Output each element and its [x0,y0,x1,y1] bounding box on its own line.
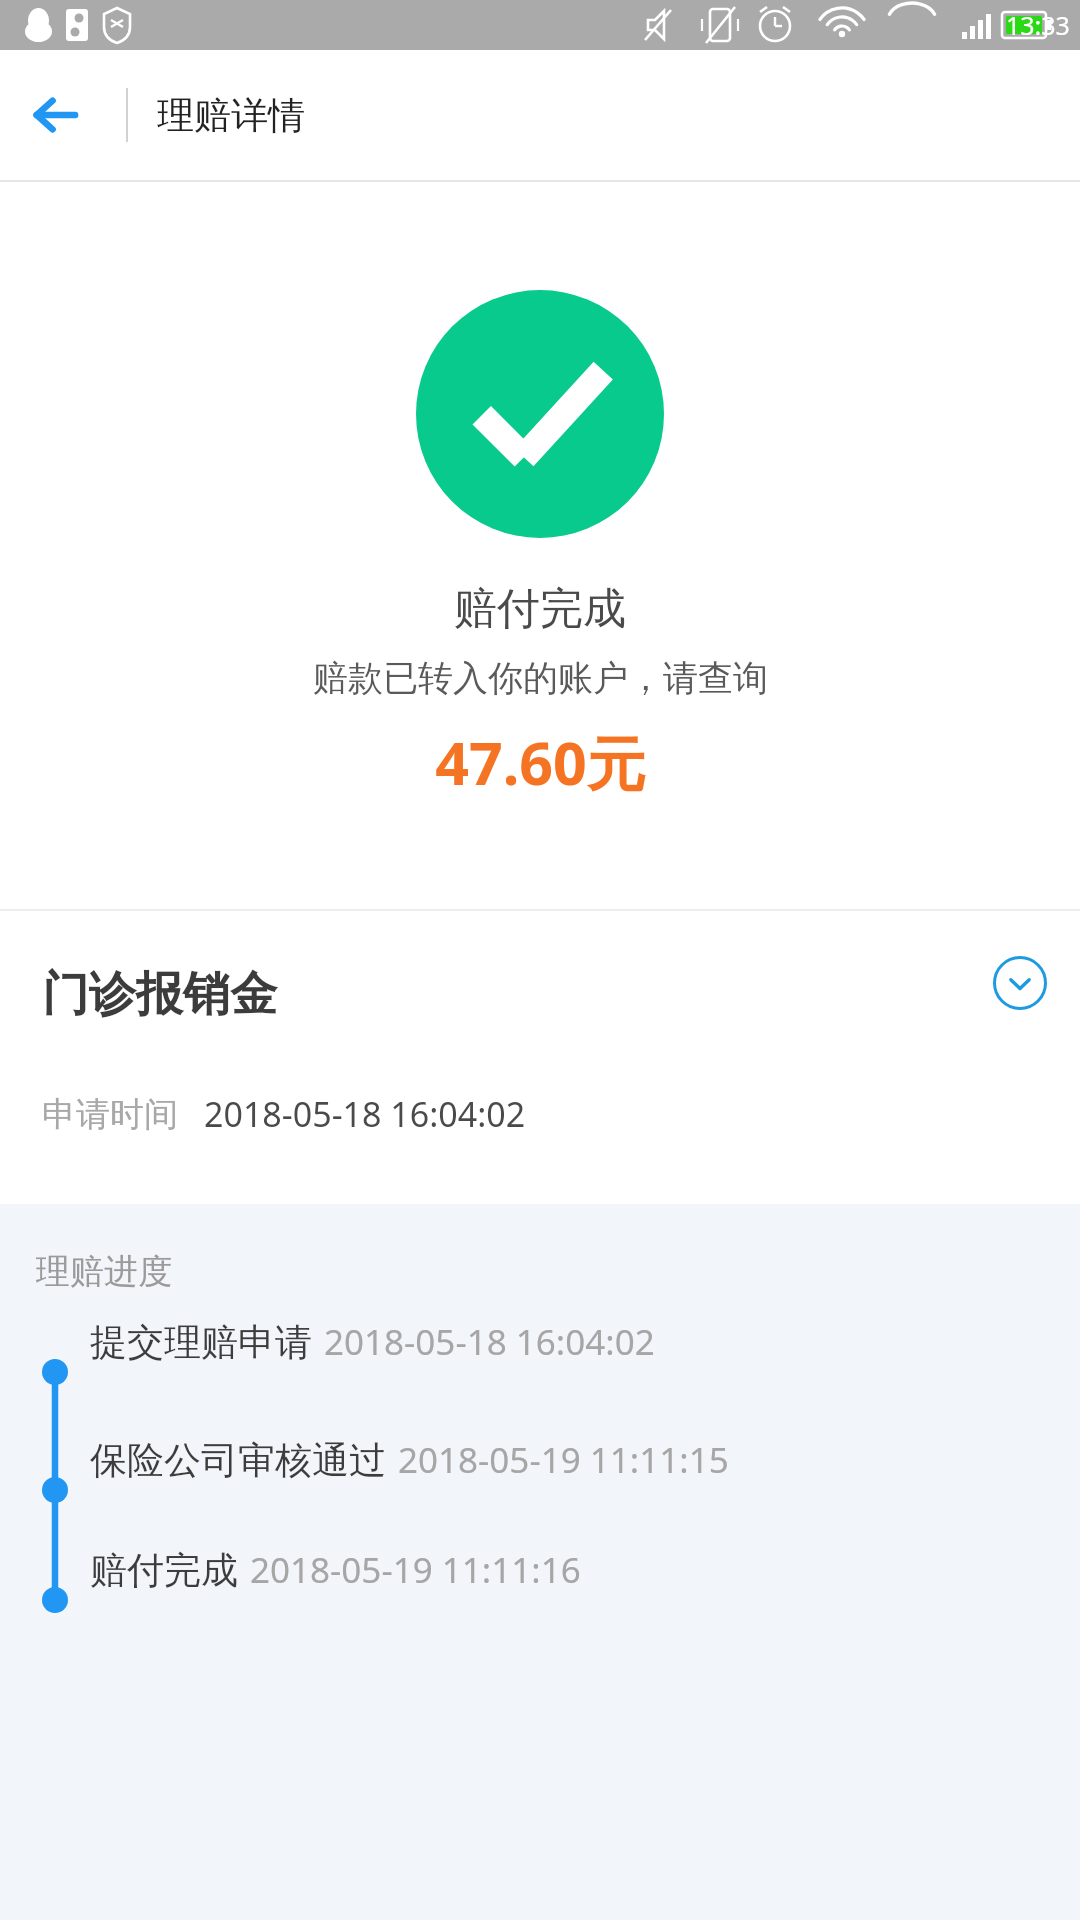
button[interactable]: 保险公司审核通过 [0,1462,1080,1572]
staticText: 2018-05-19 11:11:16 [250,1546,581,1594]
button[interactable]: 门诊报销金 [0,911,1080,1204]
staticText: 理赔进度 [36,1250,172,1293]
staticText: 47.60元 [435,722,646,803]
staticText: 赔付完成 [454,582,626,636]
staticText: 申请时间 [42,1093,178,1136]
staticText: 理赔详情 [157,92,305,139]
staticText: 13:33 [1006,8,1070,42]
staticText: 门诊报销金 [42,965,277,1024]
button[interactable]: 提交理赔申请 [0,1344,1080,1462]
button[interactable]: Back [0,60,110,170]
staticText: 2018-05-18 16:04:02 [204,1091,526,1137]
staticText: 2018-05-19 11:11:15 [398,1436,729,1484]
staticText: 赔款已转入你的账户，请查询 [313,656,768,700]
staticText: 保险公司审核通过 [90,1437,386,1484]
button[interactable]: 赔付完成 [0,1572,1080,1652]
staticText: 2018-05-18 16:04:02 [324,1318,655,1366]
staticText: 提交理赔申请 [90,1319,312,1366]
staticText: 赔付完成 [90,1547,238,1594]
button[interactable]: Expand [986,949,1054,1017]
